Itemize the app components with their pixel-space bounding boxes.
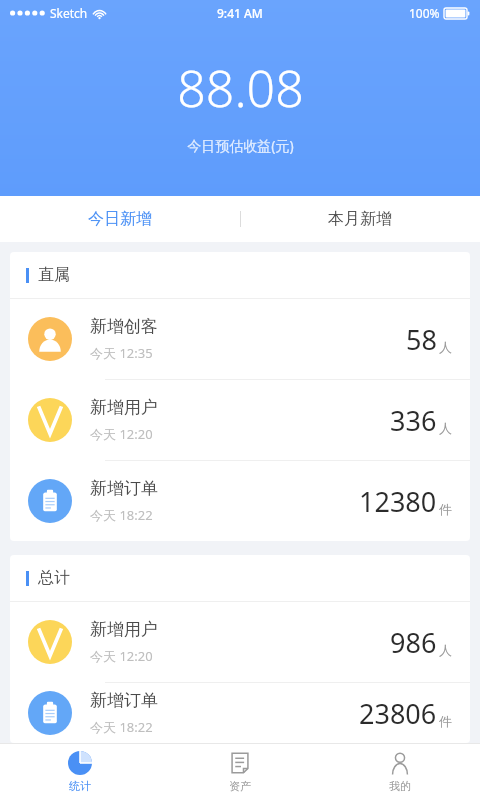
staticText: 新增用户 [90, 397, 158, 418]
staticText: 人 [439, 420, 452, 436]
staticText: 本月新增 [328, 209, 392, 229]
staticText: 件 [439, 501, 452, 517]
staticText: 新增用户 [90, 619, 158, 640]
staticText: 总计 [38, 568, 70, 588]
staticText: 新增订单 [90, 690, 158, 711]
button[interactable]: 新增用户 [10, 602, 470, 682]
staticText: 件 [439, 713, 452, 729]
staticText: 100% [409, 5, 440, 21]
staticText: 我的 [389, 779, 411, 793]
button[interactable]: 今日新增 [0, 196, 240, 242]
staticText: 新增创客 [90, 316, 158, 337]
staticText: 今天 12:20 [90, 647, 153, 665]
button[interactable]: 新增订单 [10, 683, 470, 743]
staticText: 直属 [38, 265, 70, 285]
staticText: 今天 18:22 [90, 506, 153, 524]
button[interactable]: 我的 [320, 744, 480, 800]
staticText: Sketch [50, 5, 88, 21]
staticText: 336 [390, 402, 437, 439]
staticText: 今日新增 [88, 209, 152, 229]
staticText: 资产 [229, 779, 251, 793]
staticText: 12380 [359, 483, 437, 520]
button[interactable]: 本月新增 [240, 196, 480, 242]
staticText: 9:41 AM [217, 5, 263, 21]
button[interactable]: 新增创客 [10, 299, 470, 379]
staticText: 23806 [359, 695, 437, 732]
staticText: 新增订单 [90, 478, 158, 499]
staticText: 今日预估收益(元) [187, 136, 294, 155]
staticText: 88.08 [177, 54, 304, 122]
button[interactable]: 资产 [160, 744, 320, 800]
staticText: 今天 12:20 [90, 425, 153, 443]
button[interactable]: 新增订单 [10, 461, 470, 541]
staticText: 人 [439, 642, 452, 658]
staticText: 今天 18:22 [90, 718, 153, 736]
button[interactable]: 统计 [0, 744, 160, 800]
staticText: 986 [390, 624, 437, 661]
staticText: 统计 [69, 779, 91, 793]
staticText: 人 [439, 339, 452, 355]
staticText: 今天 12:35 [90, 344, 153, 362]
button[interactable]: 新增用户 [10, 380, 470, 460]
staticText: 58 [406, 321, 437, 358]
